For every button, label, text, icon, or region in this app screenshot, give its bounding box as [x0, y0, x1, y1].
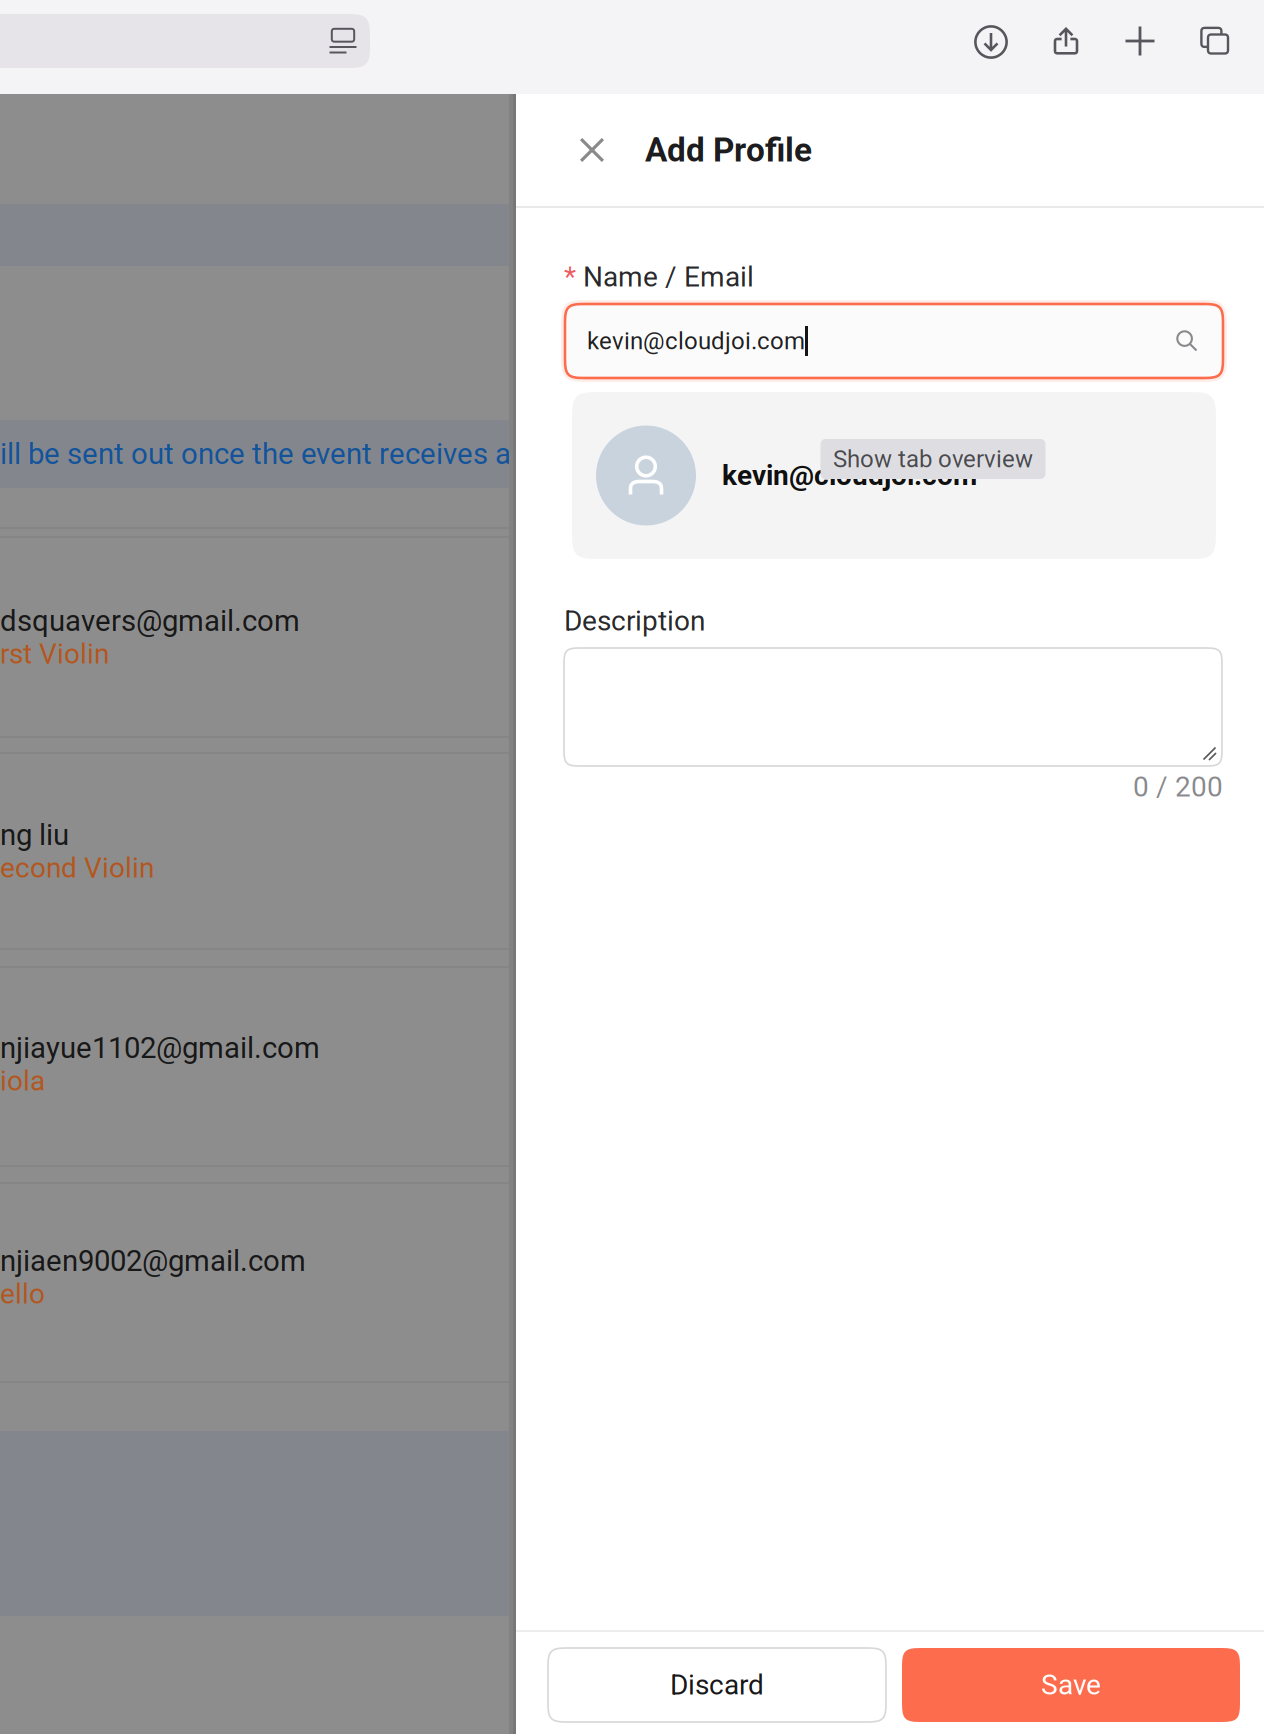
- staticText: iola: [0, 1065, 45, 1097]
- staticText: njiaen9002@gmail.com: [0, 1244, 306, 1278]
- staticText: Save: [1041, 1669, 1101, 1701]
- staticText: dsquavers@gmail.com: [0, 604, 300, 638]
- button[interactable]: Discard: [548, 1648, 886, 1722]
- staticText: Add Profile: [645, 130, 812, 170]
- button[interactable]: Downloads: [954, 0, 1028, 85]
- button[interactable]: Save: [902, 1648, 1240, 1722]
- staticText: kevin@cloudjoi.com: [722, 459, 977, 492]
- staticText: ng liu: [0, 818, 69, 852]
- staticText: kevin@cloudjoi.com: [587, 327, 805, 355]
- button[interactable]: New Tab: [1103, 0, 1177, 84]
- button[interactable]: Share: [1029, 0, 1103, 84]
- staticText: 0 / 200: [1133, 771, 1223, 803]
- staticText: ello: [0, 1278, 45, 1310]
- button[interactable]: kevin@cloudjoi.com: [564, 388, 1224, 568]
- staticText: Description: [564, 605, 705, 637]
- staticText: njiayue1102@gmail.com: [0, 1031, 320, 1065]
- staticText: rst Violin: [0, 638, 109, 670]
- staticText: *: [564, 261, 576, 293]
- staticText: econd Violin: [0, 852, 154, 884]
- staticText: Discard: [670, 1669, 764, 1701]
- staticText: Name / Email: [576, 261, 754, 293]
- staticText: Show tab overview: [833, 445, 1033, 473]
- button[interactable]: Close: [562, 120, 622, 180]
- button[interactable]: Reader: [316, 14, 370, 68]
- button[interactable]: Show tab overview: [1178, 0, 1252, 84]
- staticText: ill be sent out once the event receives …: [0, 437, 511, 471]
